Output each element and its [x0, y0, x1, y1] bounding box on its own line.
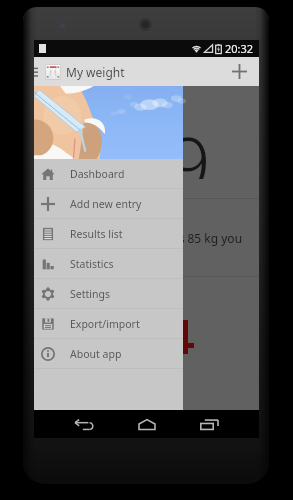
staticText: Add new entry [70, 197, 142, 211]
button[interactable]: Home [125, 410, 169, 438]
staticText: 20:32 [225, 41, 254, 56]
staticText: Statistics [70, 257, 114, 271]
staticText: Dashboard [70, 167, 125, 181]
staticText: Your goal is 85 kg you [119, 230, 243, 246]
button[interactable]: Recent apps [188, 410, 232, 438]
staticText: 89.9 [62, 111, 211, 179]
button[interactable]: Export/import [34, 309, 183, 338]
button[interactable]: About app [34, 339, 183, 368]
button[interactable]: Add new entry [221, 57, 257, 86]
staticText: About app [70, 347, 122, 361]
button[interactable]: Add new entry [34, 189, 183, 218]
button[interactable]: Dashboard [34, 159, 183, 188]
button[interactable]: Statistics [34, 249, 183, 278]
button[interactable]: Settings [34, 279, 183, 308]
staticText: Results list [70, 227, 123, 241]
button[interactable]: Open navigation drawer [34, 57, 39, 86]
staticText: Settings [70, 287, 110, 301]
button[interactable]: Results list [34, 219, 183, 248]
staticText: Export/import [70, 317, 140, 331]
button[interactable]: Back [62, 410, 106, 438]
staticText: My weight [66, 64, 125, 80]
